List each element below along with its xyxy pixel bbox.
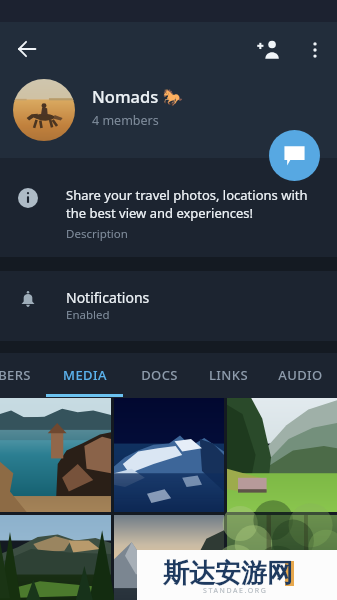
button[interactable]: Group photo: [13, 79, 75, 141]
button[interactable]: Send message: [269, 130, 320, 181]
staticText: 4 members: [92, 112, 159, 129]
staticText: BERS: [0, 366, 31, 384]
button[interactable]: BERS: [0, 353, 53, 398]
staticText: Description: [66, 226, 128, 242]
staticText: Share your travel photos, locations with…: [66, 186, 328, 222]
staticText: Notifications: [66, 288, 150, 307]
staticText: 斯达安游网: [163, 557, 293, 590]
button[interactable]: MEDIA: [46, 353, 123, 398]
staticText: MEDIA: [63, 366, 107, 384]
button[interactable]: More options: [297, 32, 332, 67]
staticText: DOCS: [141, 366, 178, 384]
button[interactable]: [0, 515, 111, 600]
button[interactable]: [0, 271, 337, 341]
button[interactable]: [0, 398, 111, 512]
staticText: Enabled: [66, 307, 110, 323]
button[interactable]: [227, 515, 337, 600]
button[interactable]: Back: [9, 31, 45, 67]
staticText: Nomads 🐎: [92, 85, 184, 107]
button[interactable]: Add member: [248, 29, 288, 69]
staticText: STANDAE.ORG: [203, 586, 268, 596]
button[interactable]: [227, 398, 337, 512]
button[interactable]: LINKS: [190, 353, 267, 398]
button[interactable]: [0, 158, 337, 257]
button[interactable]: [114, 398, 224, 512]
button[interactable]: DOCS: [121, 353, 198, 398]
button[interactable]: [114, 515, 224, 600]
staticText: LINKS: [209, 366, 248, 384]
button[interactable]: AUDIO: [262, 353, 337, 398]
staticText: AUDIO: [278, 366, 323, 384]
